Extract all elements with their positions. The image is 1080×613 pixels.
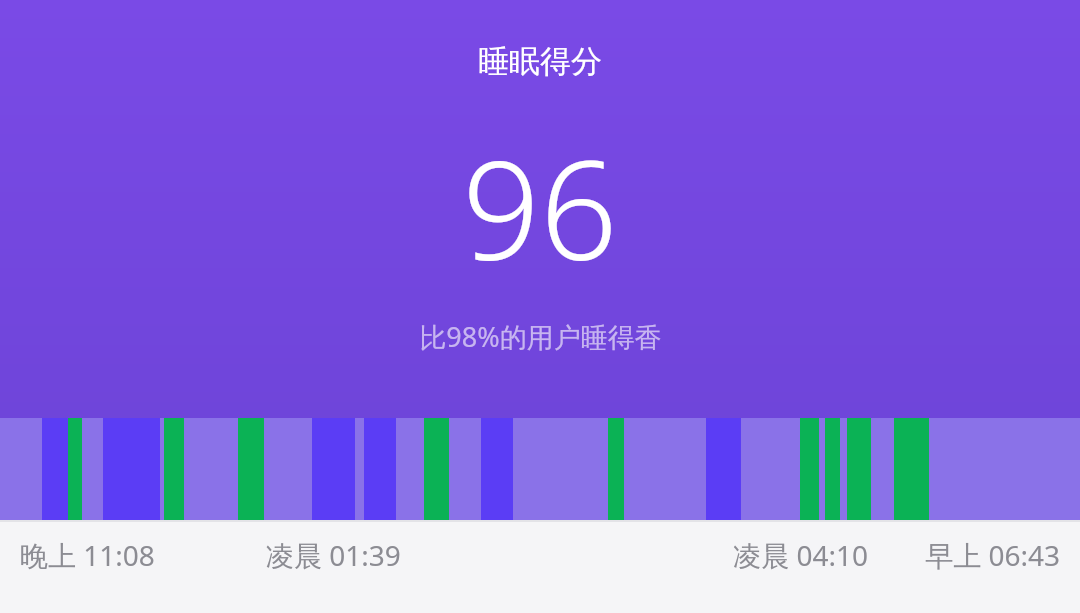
button[interactable]: 睡眠阶段图表 xyxy=(0,418,1080,520)
staticText: 睡眠得分 xyxy=(478,42,602,81)
staticText: 晚上 11:08 xyxy=(20,536,266,574)
staticText: 96 xyxy=(462,115,618,300)
staticText: 凌晨 04:10 xyxy=(598,536,868,574)
staticText: 比98%的用户睡得香 xyxy=(419,318,662,355)
staticText: 凌晨 01:39 xyxy=(266,536,598,574)
staticText: 早上 06:43 xyxy=(868,536,1060,574)
